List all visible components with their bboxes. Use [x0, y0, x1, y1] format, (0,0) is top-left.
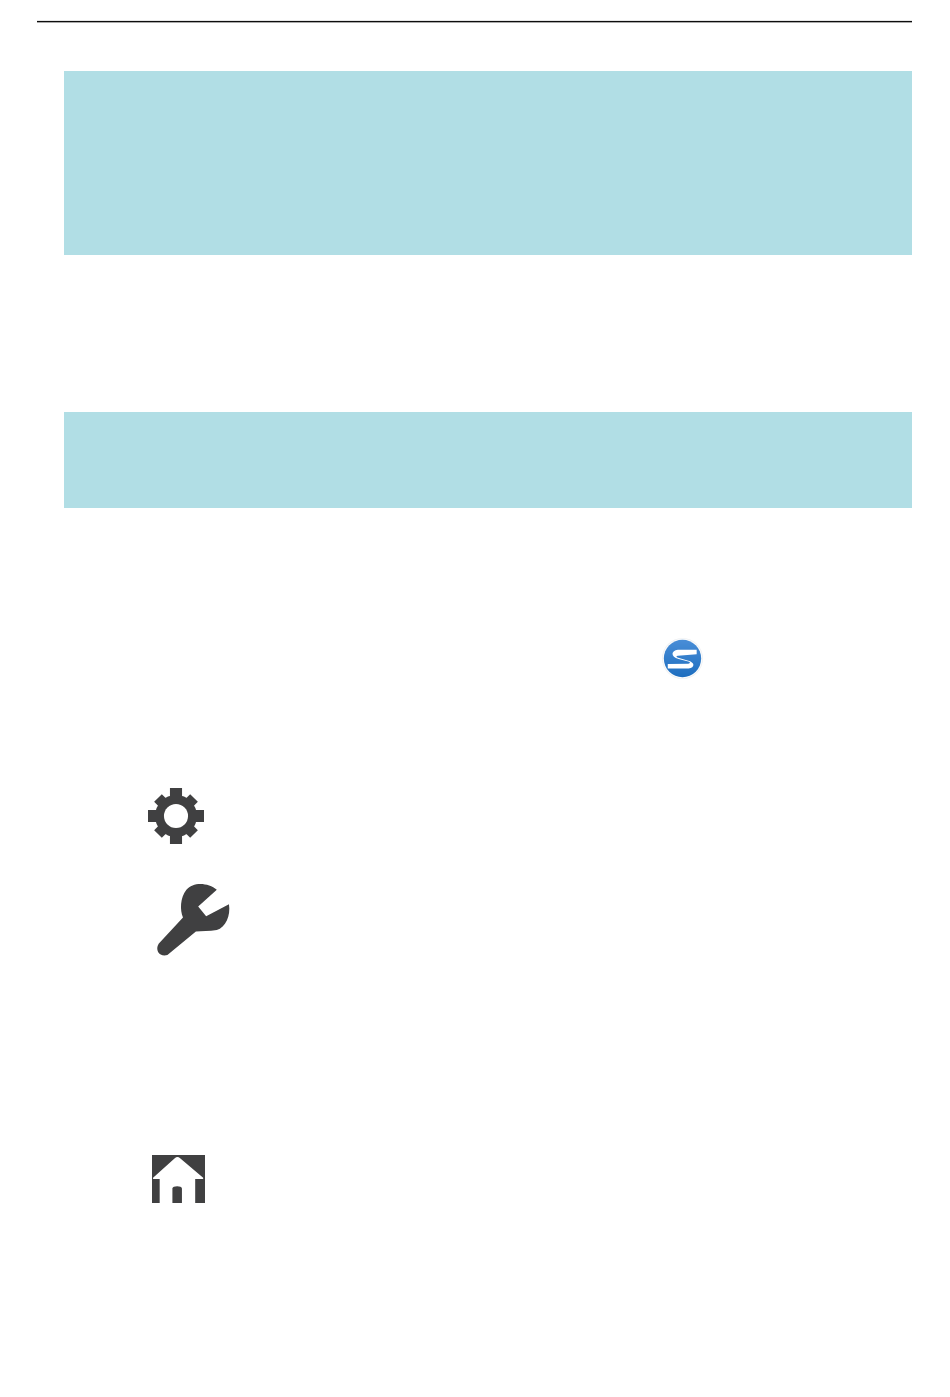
- button[interactable]: Home: [152, 1155, 205, 1203]
- button[interactable]: Tools: [156, 881, 232, 957]
- button[interactable]: Settings: [148, 788, 204, 844]
- button[interactable]: Brand logo: [662, 638, 703, 679]
